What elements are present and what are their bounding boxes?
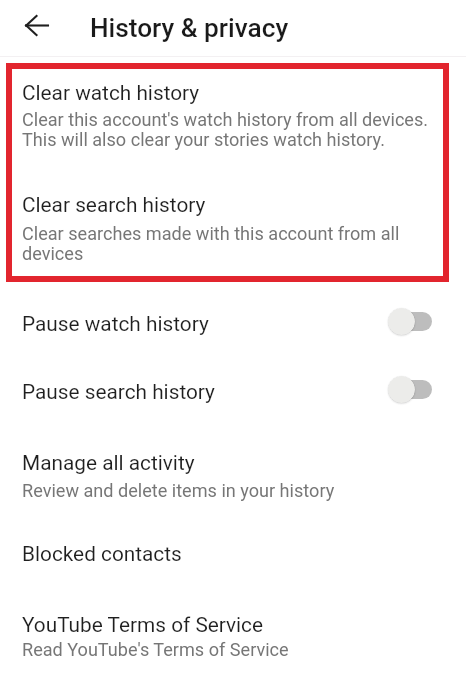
staticText: Review and delete items in your history [22,480,335,501]
staticText: Clear searches made with this account fr… [22,223,432,264]
button[interactable]: Pause search history [0,358,466,430]
staticText: Blocked contacts [22,542,182,566]
button[interactable]: Pause search history switch, off [388,375,432,409]
staticText: Pause watch history [22,312,209,336]
button[interactable]: Pause watch history [0,286,466,358]
button[interactable]: Manage all activity [0,430,466,521]
button[interactable]: Pause watch history switch, off [388,307,432,341]
staticText: Clear search history [22,193,206,217]
staticText: Pause search history [22,380,215,404]
button[interactable]: Clear search history [0,172,466,285]
staticText: Clear watch history [22,81,200,105]
staticText: Clear this account's watch history from … [22,109,432,150]
button[interactable]: Navigate back [13,1,61,49]
staticText: Read YouTube's Terms of Service [22,639,289,660]
staticText: History & privacy [90,13,289,44]
staticText: Manage all activity [22,451,195,475]
button[interactable]: Blocked contacts [0,521,466,589]
staticText: YouTube Terms of Service [22,613,264,637]
button[interactable]: YouTube Terms of Service [0,589,466,680]
button[interactable]: Clear watch history [0,69,466,171]
